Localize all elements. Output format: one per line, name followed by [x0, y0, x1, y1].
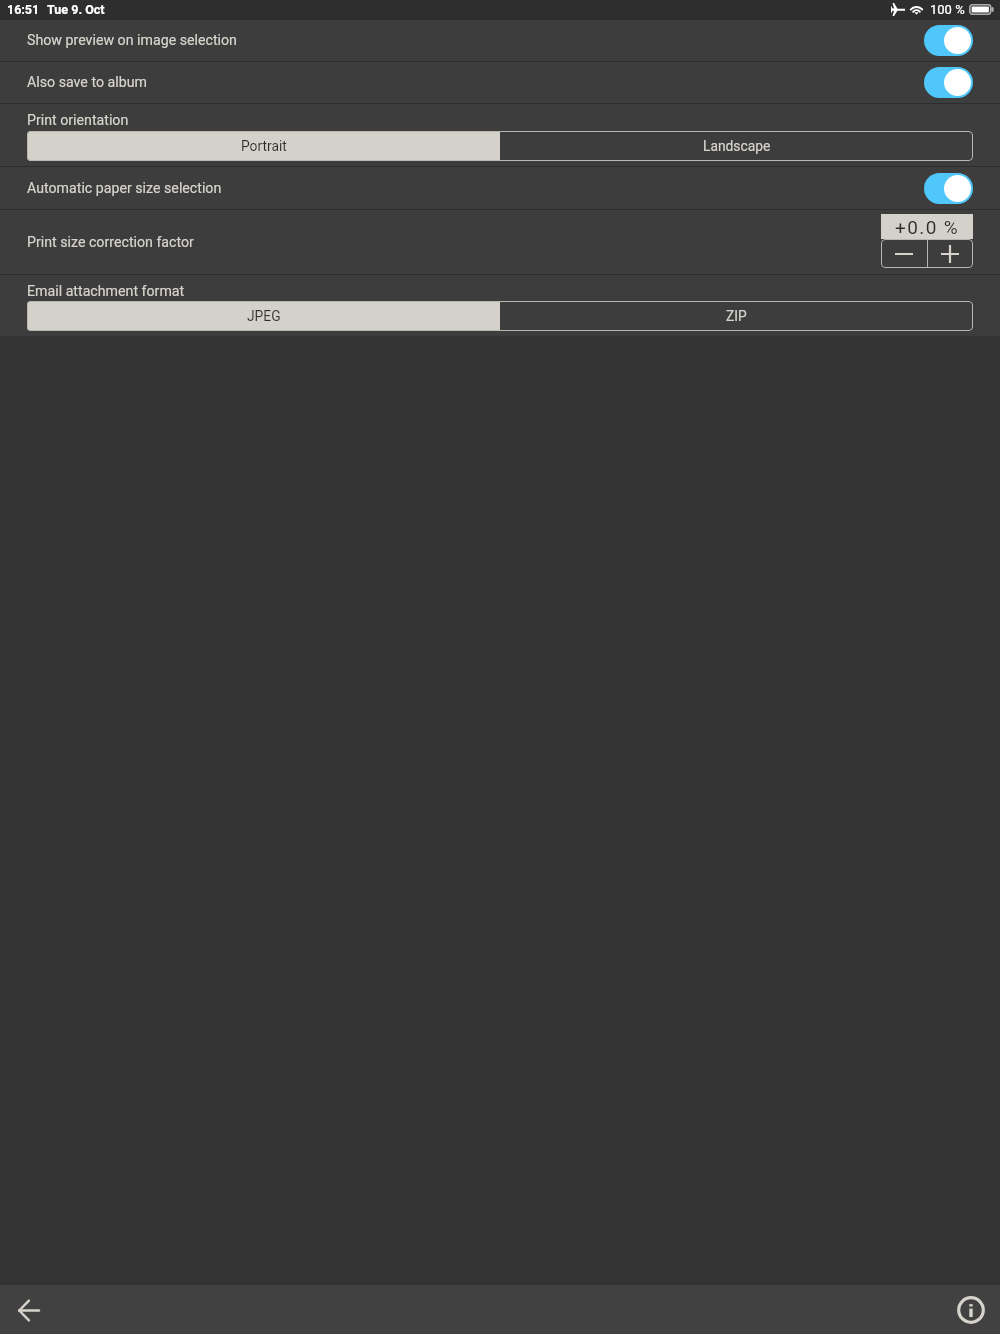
- button[interactable]: Also save to album: [0, 62, 1000, 103]
- button[interactable]: Automatic paper size selection: [0, 167, 1000, 209]
- button[interactable]: Info: [950, 1289, 992, 1331]
- staticText: Portrait: [241, 138, 287, 154]
- other: Toggle: [924, 173, 973, 204]
- staticText: Automatic paper size selection: [27, 180, 222, 197]
- staticText: Tue 9. Oct: [47, 2, 105, 17]
- other: Toggle: [924, 67, 973, 98]
- staticText: JPEG: [247, 308, 281, 324]
- button[interactable]: Show preview on image selection: [0, 20, 1000, 61]
- staticText: Print size correction factor: [27, 234, 194, 251]
- staticText: +0.0 %: [895, 216, 960, 238]
- staticText: Email attachment format: [27, 283, 185, 300]
- staticText: Print orientation: [27, 112, 129, 129]
- button[interactable]: JPEG: [27, 301, 500, 331]
- staticText: 100 %: [930, 2, 965, 17]
- staticText: 16:51: [7, 2, 40, 17]
- button[interactable]: Increase: [927, 239, 973, 268]
- other: Toggle: [924, 25, 973, 56]
- staticText: Also save to album: [27, 74, 147, 91]
- button[interactable]: ZIP: [500, 301, 973, 331]
- staticText: Landscape: [703, 138, 771, 154]
- staticText: Show preview on image selection: [27, 32, 237, 49]
- button[interactable]: Landscape: [500, 131, 973, 161]
- button[interactable]: Decrease: [881, 239, 927, 268]
- button[interactable]: Portrait: [27, 131, 500, 161]
- staticText: ZIP: [726, 308, 747, 324]
- button[interactable]: Back: [7, 1289, 49, 1331]
